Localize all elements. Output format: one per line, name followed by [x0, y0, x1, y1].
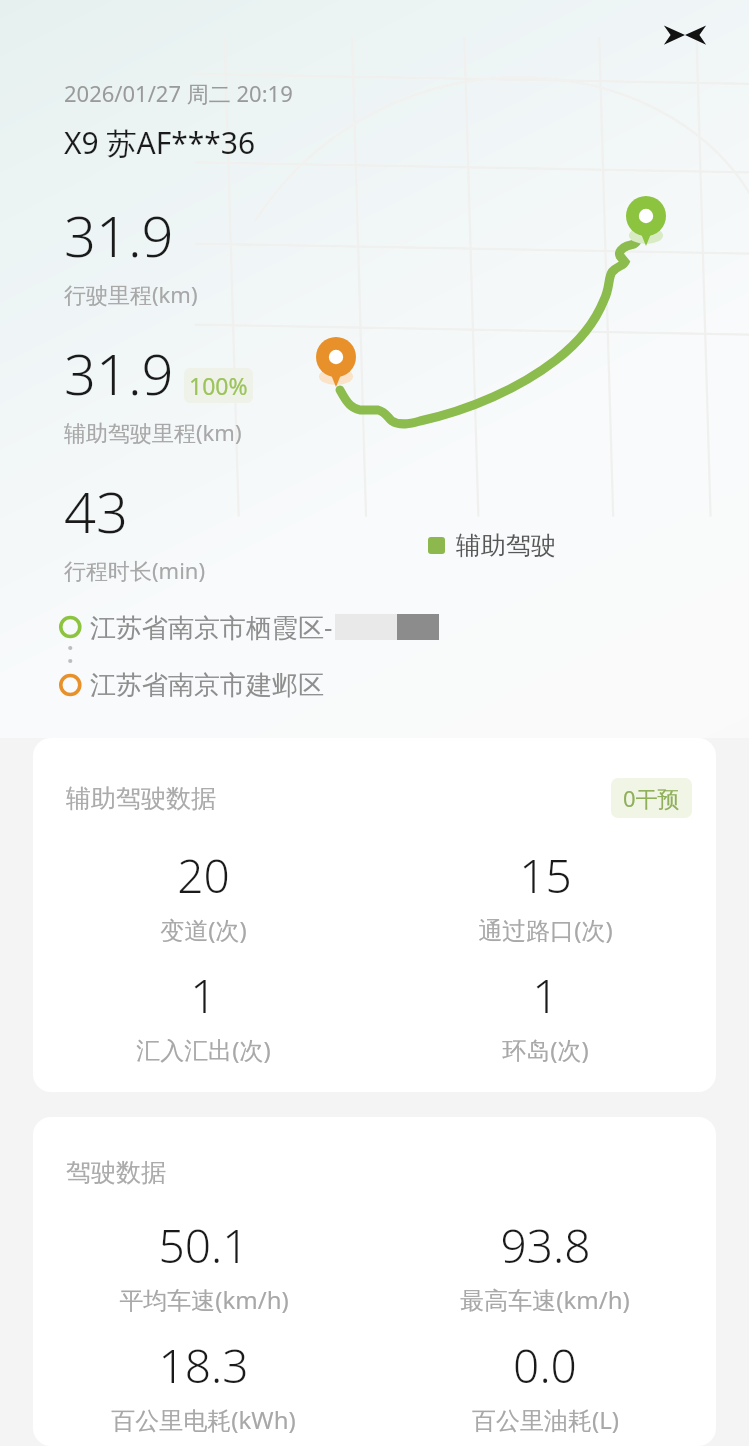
staticText: 辅助驾驶数据	[66, 783, 216, 814]
button[interactable]: 驾驶数据	[33, 1117, 716, 1446]
staticText: 百公里电耗(kWh)	[111, 1403, 296, 1436]
staticText: 环岛(次)	[502, 1033, 589, 1066]
staticText: 50.1	[158, 1214, 249, 1277]
staticText: 行驶里程(km)	[64, 279, 198, 309]
staticText: 1	[532, 964, 559, 1027]
staticText: 31.9	[64, 335, 174, 411]
staticText: 通过路口(次)	[478, 913, 613, 946]
staticText: X9 苏AF***36	[64, 122, 256, 163]
staticText: 辅助驾驶里程(km)	[64, 417, 242, 447]
staticText: 2026/01/27 周二 20:19	[64, 78, 293, 108]
staticText: 43	[64, 473, 128, 549]
staticText: 江苏省南京市建邺区	[90, 669, 324, 702]
staticText: 行程时长(min)	[64, 555, 206, 585]
staticText: 辅助驾驶	[456, 530, 556, 561]
staticText: 20	[177, 844, 230, 907]
staticText: 1	[190, 964, 217, 1027]
staticText: 100%	[189, 370, 248, 401]
button[interactable]: 辅助驾驶数据	[33, 738, 716, 1092]
staticText: 0.0	[513, 1334, 577, 1397]
staticText: 平均车速(km/h)	[119, 1283, 289, 1316]
staticText: 15	[519, 844, 572, 907]
staticText: 江苏省南京市栖霞区-	[90, 609, 333, 645]
staticText: 93.8	[500, 1214, 591, 1277]
staticText: 变道(次)	[160, 913, 247, 946]
button[interactable]: XPeng logo	[661, 14, 709, 62]
staticText: 汇入汇出(次)	[136, 1033, 271, 1066]
staticText: 百公里油耗(L)	[472, 1403, 619, 1436]
staticText: 18.3	[158, 1334, 249, 1397]
staticText: 31.9	[64, 197, 174, 273]
staticText: 最高车速(km/h)	[460, 1283, 630, 1316]
staticText: 驾驶数据	[66, 1157, 166, 1188]
staticText: 0干预	[623, 783, 680, 813]
